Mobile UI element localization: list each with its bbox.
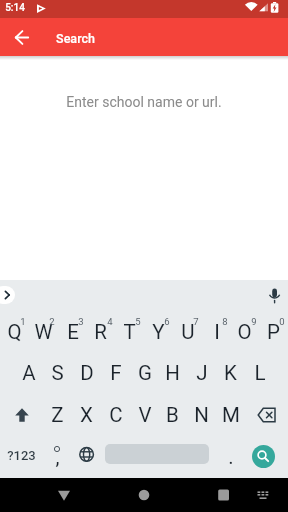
button[interactable] bbox=[252, 445, 275, 468]
button[interactable] bbox=[0, 394, 43, 436]
button[interactable] bbox=[245, 394, 288, 436]
staticText: N bbox=[194, 403, 209, 427]
staticText: 5 bbox=[135, 316, 141, 327]
staticText: 9 bbox=[251, 316, 257, 327]
staticText: , bbox=[55, 445, 60, 469]
staticText: X bbox=[80, 403, 93, 427]
staticText: M bbox=[222, 403, 240, 427]
button[interactable]: G bbox=[130, 352, 159, 394]
button[interactable] bbox=[0, 286, 15, 304]
staticText: T bbox=[123, 320, 136, 344]
staticText: R bbox=[94, 320, 107, 344]
staticText: J bbox=[196, 361, 208, 385]
staticText: ?123 bbox=[7, 448, 36, 463]
staticText: Search bbox=[56, 31, 95, 46]
button[interactable]: O bbox=[230, 311, 259, 353]
button[interactable]: , bbox=[43, 436, 72, 478]
staticText: . bbox=[228, 445, 234, 469]
staticText: O bbox=[237, 320, 252, 344]
staticText: 5:14 bbox=[5, 2, 25, 14]
button[interactable]: M bbox=[216, 394, 245, 436]
button[interactable]: . bbox=[216, 436, 245, 478]
staticText: I bbox=[214, 320, 220, 344]
button[interactable]: B bbox=[158, 394, 187, 436]
button[interactable]: N bbox=[187, 394, 216, 436]
button[interactable]: F bbox=[101, 352, 130, 394]
staticText: 3 bbox=[78, 316, 84, 327]
staticText: 4 bbox=[107, 316, 113, 327]
staticText: S bbox=[51, 361, 64, 385]
staticText: Q bbox=[7, 320, 22, 344]
staticText: Enter school name or url. bbox=[66, 94, 222, 110]
button[interactable] bbox=[192, 478, 288, 512]
button[interactable]: Z bbox=[43, 394, 72, 436]
button[interactable]: K bbox=[216, 352, 245, 394]
staticText: 7 bbox=[193, 316, 199, 327]
staticText: 0 bbox=[279, 316, 285, 327]
button[interactable]: ?123 bbox=[0, 436, 43, 478]
staticText: 1 bbox=[20, 316, 26, 327]
button[interactable]: Y bbox=[144, 311, 173, 353]
button[interactable]: I bbox=[202, 311, 231, 353]
staticText: B bbox=[166, 403, 179, 427]
staticText: Z bbox=[51, 403, 64, 427]
staticText: C bbox=[109, 403, 123, 427]
staticText: 6 bbox=[164, 316, 170, 327]
button[interactable]: H bbox=[158, 352, 187, 394]
button[interactable]: A bbox=[14, 352, 43, 394]
staticText: A bbox=[22, 361, 36, 385]
staticText: 8 bbox=[222, 316, 228, 327]
button[interactable]: W bbox=[29, 311, 58, 353]
button[interactable]: Q bbox=[0, 311, 29, 353]
staticText: G bbox=[138, 361, 152, 385]
staticText: F bbox=[110, 361, 122, 385]
staticText: W bbox=[34, 320, 53, 344]
staticText: D bbox=[80, 361, 94, 385]
button[interactable] bbox=[72, 436, 101, 478]
staticText: P bbox=[267, 320, 280, 344]
button[interactable] bbox=[6, 21, 38, 53]
button[interactable]: J bbox=[187, 352, 216, 394]
staticText: H bbox=[165, 361, 180, 385]
staticText: L bbox=[254, 361, 266, 385]
staticText: Y bbox=[152, 320, 165, 344]
staticText: U bbox=[181, 320, 195, 344]
button[interactable]: P bbox=[259, 311, 288, 353]
button[interactable]: S bbox=[43, 352, 72, 394]
button[interactable]: U bbox=[173, 311, 202, 353]
button[interactable]: E bbox=[58, 311, 87, 353]
button[interactable]: T bbox=[115, 311, 144, 353]
staticText: 2 bbox=[49, 316, 55, 327]
staticText: K bbox=[224, 361, 237, 385]
button[interactable]: R bbox=[86, 311, 115, 353]
staticText: E bbox=[67, 320, 79, 344]
button[interactable] bbox=[0, 478, 96, 512]
button[interactable]: L bbox=[245, 352, 274, 394]
button[interactable]: V bbox=[130, 394, 159, 436]
button[interactable]: X bbox=[72, 394, 101, 436]
button[interactable] bbox=[96, 478, 192, 512]
button[interactable]: D bbox=[72, 352, 101, 394]
staticText: V bbox=[138, 403, 152, 427]
button[interactable]: C bbox=[101, 394, 130, 436]
